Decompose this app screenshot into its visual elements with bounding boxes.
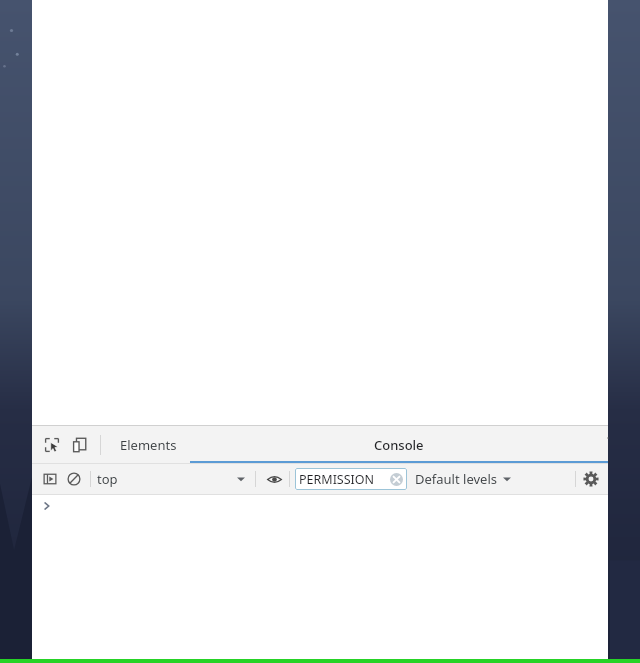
button[interactable]: Toggle device toolbar: [66, 431, 94, 459]
button[interactable]: Console: [190, 426, 608, 463]
staticText: Elements: [120, 436, 177, 454]
staticText: Default levels: [415, 470, 497, 488]
button[interactable]: Create live expression: [262, 467, 286, 491]
button[interactable]: top: [97, 468, 249, 490]
staticText: PERMISSION: [299, 471, 375, 488]
button[interactable]: Clear console: [62, 467, 86, 491]
button[interactable]: PERMISSION: [295, 468, 407, 490]
button[interactable]: Elements: [107, 426, 190, 463]
staticText: Console: [374, 436, 424, 454]
button[interactable]: Default levels: [415, 468, 511, 490]
staticText: top: [97, 470, 118, 488]
button[interactable]: Console settings: [578, 466, 604, 492]
button[interactable]: Console sidebar: [38, 467, 62, 491]
button[interactable]: Inspect element: [38, 431, 66, 459]
